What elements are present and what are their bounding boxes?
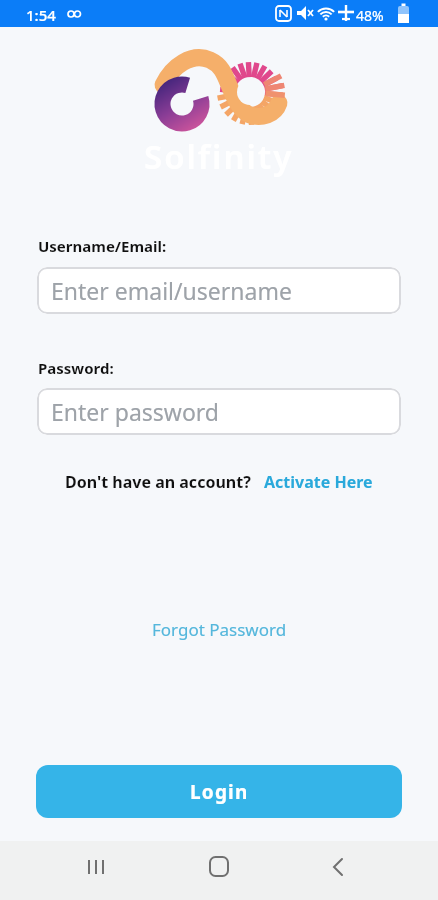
button[interactable]: Login bbox=[36, 765, 402, 818]
staticText: Solfinity bbox=[144, 134, 294, 179]
staticText: Enter password bbox=[51, 396, 220, 427]
button[interactable]: Enter email/username bbox=[37, 267, 401, 314]
staticText: Login bbox=[190, 779, 249, 805]
button[interactable]: Activate Here bbox=[264, 471, 373, 493]
staticText: Username/Email: bbox=[38, 236, 167, 256]
button[interactable]: Forgot Password bbox=[152, 618, 287, 641]
staticText: 48% bbox=[356, 6, 384, 25]
button[interactable] bbox=[0, 841, 146, 900]
staticText: 1:54 bbox=[26, 5, 56, 25]
staticText: Don't have an account? bbox=[65, 471, 251, 493]
staticText: Password: bbox=[38, 358, 114, 378]
button[interactable]: Enter password bbox=[37, 388, 401, 435]
button[interactable] bbox=[146, 841, 292, 900]
staticText: Enter email/username bbox=[51, 275, 292, 306]
button[interactable] bbox=[292, 841, 438, 900]
